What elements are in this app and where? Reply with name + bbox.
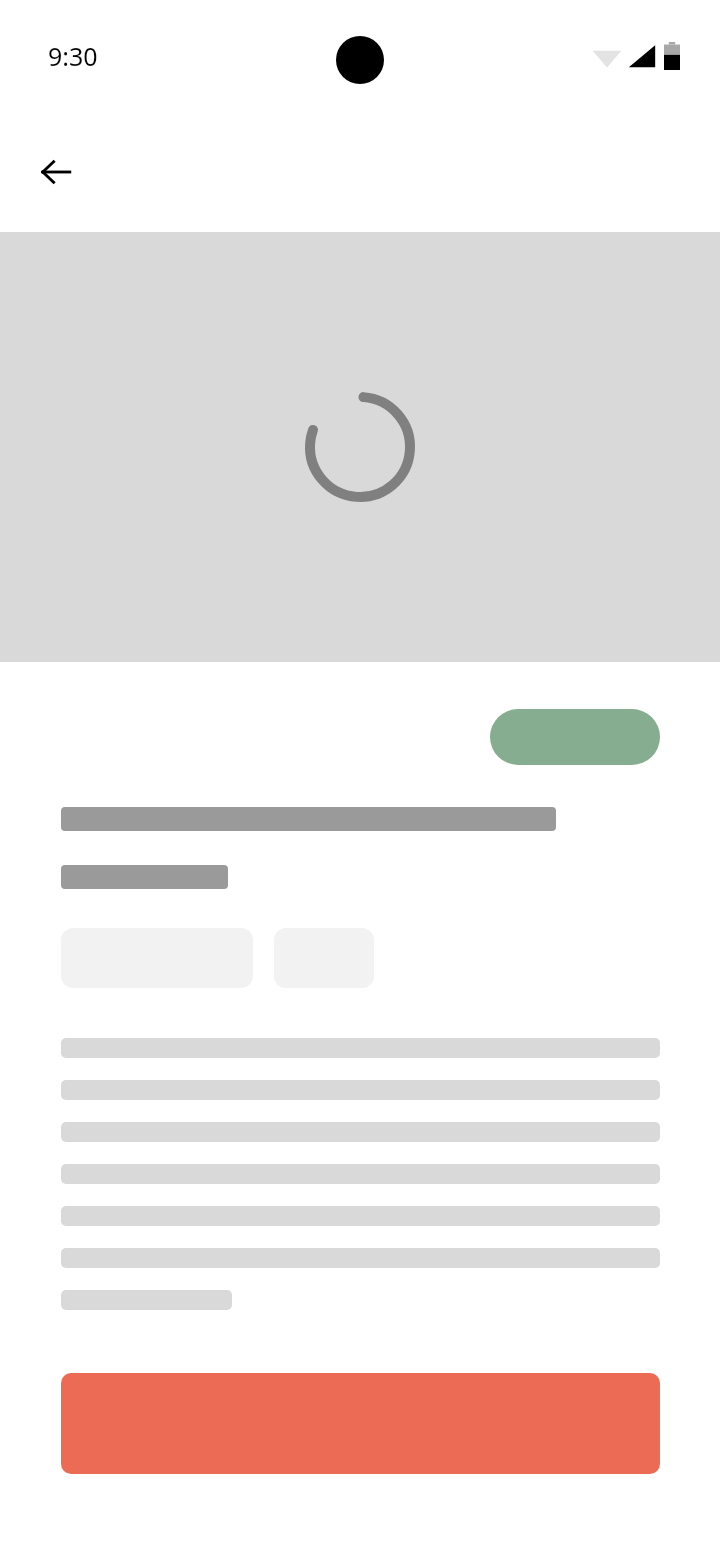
staticText: 9:30 xyxy=(48,39,98,73)
button[interactable] xyxy=(490,709,660,765)
button[interactable] xyxy=(61,1373,660,1474)
button[interactable]: Back xyxy=(24,140,88,204)
